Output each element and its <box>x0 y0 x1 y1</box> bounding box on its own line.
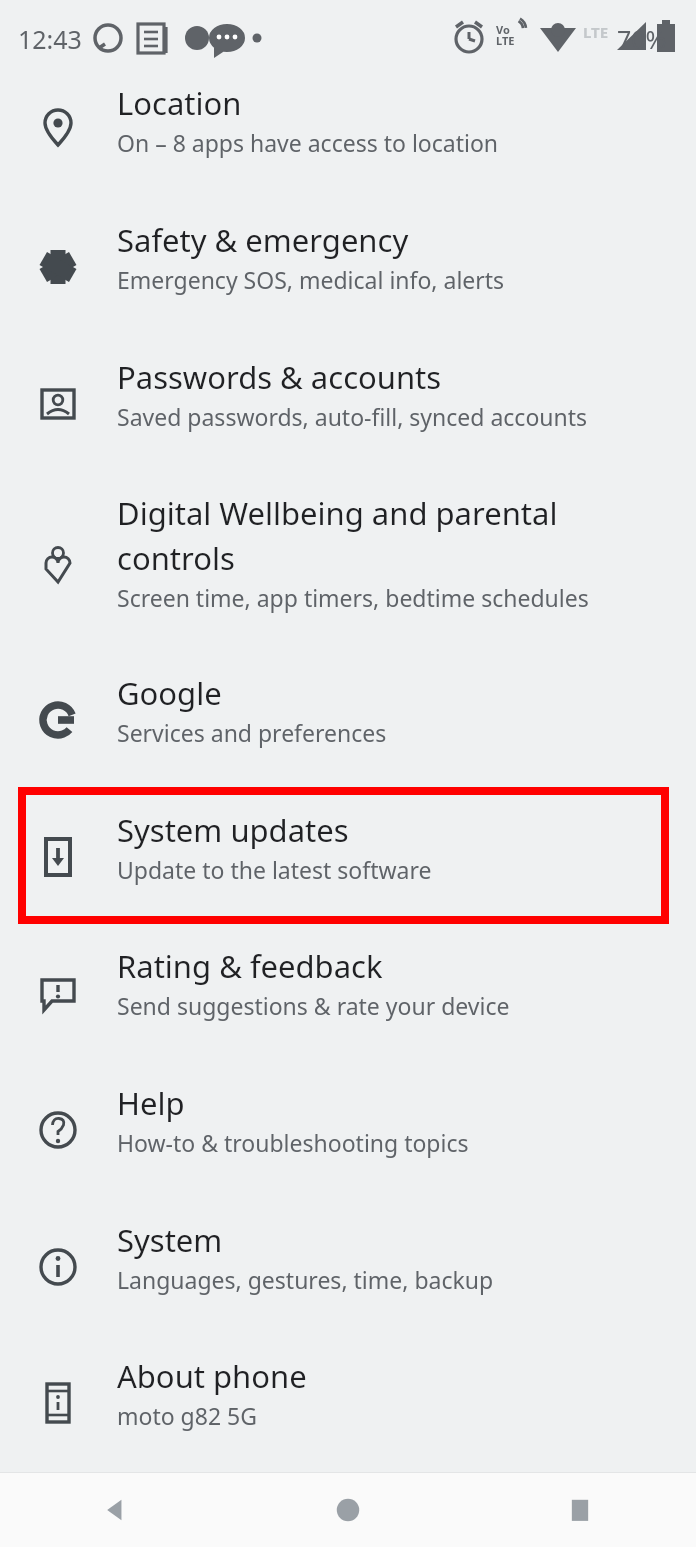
button[interactable]: Help <box>0 1080 696 1196</box>
staticText: System <box>117 1219 637 1261</box>
button[interactable]: Back <box>0 1473 232 1547</box>
staticText: Languages, gestures, time, backup <box>117 1264 494 1295</box>
staticText: On – 8 apps have access to location <box>117 127 499 158</box>
button[interactable]: Recent apps <box>464 1473 696 1547</box>
staticText: Screen time, app timers, bedtime schedul… <box>117 582 589 613</box>
staticText: LTE <box>583 22 609 42</box>
staticText: Services and preferences <box>117 717 387 748</box>
button[interactable]: Google <box>0 670 696 786</box>
staticText: About phone <box>117 1355 637 1397</box>
staticText: Digital Wellbeing and parental controls <box>117 492 637 579</box>
staticText: 70% <box>617 22 667 56</box>
staticText: Help <box>117 1082 637 1124</box>
staticText: System updates <box>117 809 637 851</box>
staticText: Safety & emergency <box>117 219 637 261</box>
button[interactable]: Home <box>232 1473 464 1547</box>
staticText: Send suggestions & rate your device <box>117 990 510 1021</box>
staticText: moto g82 5G <box>117 1400 257 1431</box>
button[interactable]: System updates <box>0 807 696 923</box>
staticText: Google <box>117 672 637 714</box>
button[interactable]: Safety & emergency <box>0 217 696 333</box>
staticText: Saved passwords, auto-fill, synced accou… <box>117 401 588 432</box>
button[interactable]: Digital Wellbeing and parental controls <box>0 490 696 650</box>
staticText: Passwords & accounts <box>117 356 637 398</box>
staticText: Emergency SOS, medical info, alerts <box>117 264 505 295</box>
staticText: 12:43 <box>18 22 82 56</box>
button[interactable]: System <box>0 1217 696 1333</box>
button[interactable]: Passwords & accounts <box>0 354 696 470</box>
button[interactable]: Location <box>0 80 696 196</box>
staticText: Vo LTE <box>496 22 515 49</box>
staticText: Location <box>117 82 637 124</box>
button[interactable]: About phone <box>0 1353 696 1469</box>
staticText: Rating & feedback <box>117 945 637 987</box>
staticText: How-to & troubleshooting topics <box>117 1127 469 1158</box>
staticText: Update to the latest software <box>117 854 432 885</box>
button[interactable]: Rating & feedback <box>0 943 696 1059</box>
